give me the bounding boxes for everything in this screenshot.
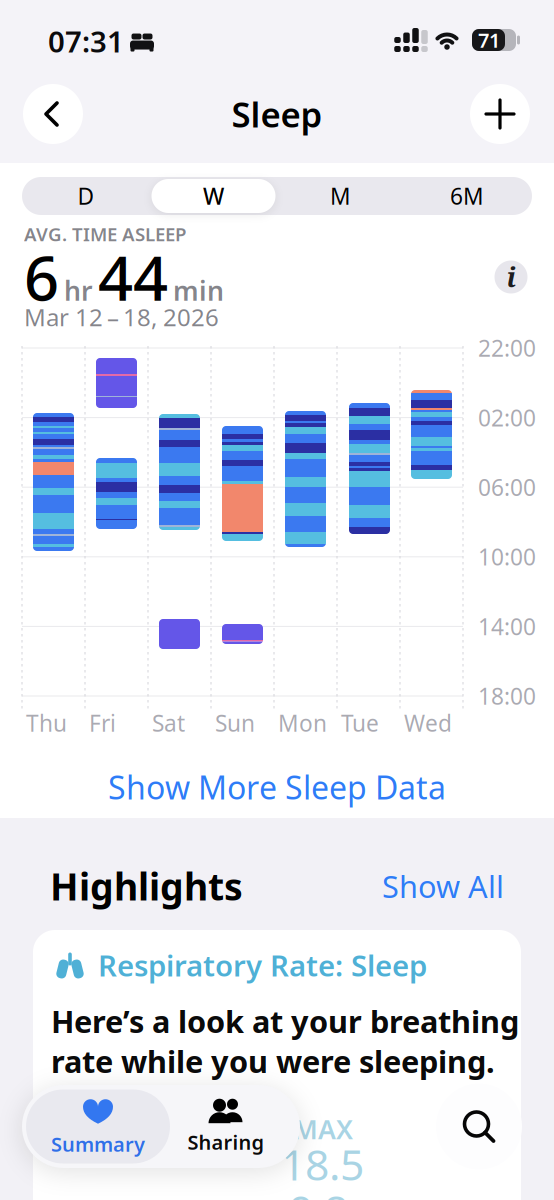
- staticText: Summary: [51, 1131, 145, 1157]
- staticText: 9.8: [289, 1182, 348, 1200]
- staticText: Highlights: [50, 861, 243, 911]
- staticText: Sun: [215, 708, 255, 738]
- button[interactable]: W: [150, 177, 277, 215]
- staticText: 71: [478, 27, 500, 53]
- staticText: 02:00: [478, 402, 536, 433]
- button[interactable]: 6M: [403, 177, 530, 215]
- staticText: Mar 12 – 18, 2026: [24, 301, 219, 333]
- button[interactable]: Sharing: [171, 1089, 281, 1164]
- staticText: 10:00: [478, 542, 536, 572]
- staticText: MAX: [293, 1111, 353, 1147]
- button[interactable]: Show All: [304, 866, 504, 906]
- button[interactable]: D: [22, 177, 149, 215]
- staticText: 44: [98, 236, 168, 318]
- staticText: AVG. TIME ASLEEP: [24, 222, 186, 246]
- button[interactable]: Back: [23, 84, 83, 144]
- staticText: 07:31: [48, 21, 124, 60]
- staticText: Sharing: [187, 1129, 264, 1155]
- staticText: hr: [64, 273, 93, 308]
- staticText: D: [77, 181, 94, 211]
- staticText: Tue: [341, 708, 379, 738]
- button[interactable]: Summary: [28, 1089, 168, 1164]
- staticText: Sleep: [231, 91, 322, 137]
- button[interactable]: Info: [494, 260, 527, 293]
- staticText: 18.5: [281, 1136, 364, 1192]
- staticText: 6: [24, 236, 59, 318]
- staticText: Show All: [382, 866, 504, 906]
- button[interactable]: Search: [436, 1083, 522, 1169]
- staticText: 06:00: [478, 472, 536, 502]
- staticText: Respiratory Rate: Sleep: [98, 945, 427, 984]
- staticText: Here’s a look at your breathing: [51, 1001, 519, 1041]
- staticText: W: [203, 181, 224, 211]
- button[interactable]: Show More Sleep Data: [108, 766, 446, 808]
- staticText: 18:00: [478, 681, 536, 711]
- staticText: Show More Sleep Data: [108, 766, 446, 808]
- staticText: Mon: [278, 708, 327, 738]
- staticText: 22:00: [478, 333, 536, 363]
- staticText: Thu: [26, 708, 67, 738]
- staticText: i: [506, 259, 515, 295]
- staticText: rate while you were sleeping.: [51, 1041, 495, 1081]
- staticText: M: [330, 181, 351, 211]
- staticText: Wed: [404, 708, 452, 738]
- button[interactable]: Add Data: [470, 84, 530, 144]
- staticText: 6M: [450, 181, 484, 211]
- staticText: 14:00: [478, 611, 536, 641]
- staticText: min: [173, 273, 224, 308]
- button[interactable]: M: [277, 177, 404, 215]
- staticText: Sat: [152, 708, 185, 738]
- staticText: Fri: [89, 708, 116, 738]
